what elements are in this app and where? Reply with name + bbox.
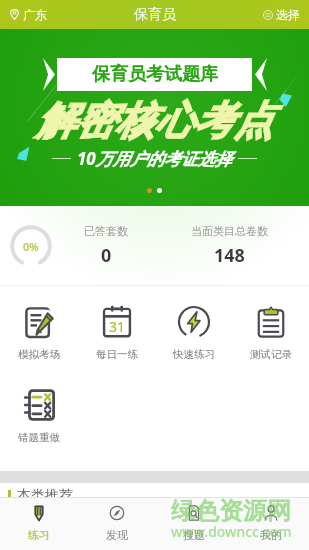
staticText: 148	[214, 243, 245, 268]
button[interactable]: 错题重做	[0, 369, 77, 452]
staticText: 0%	[23, 239, 39, 254]
staticText: www.downcc.com	[171, 522, 292, 541]
staticText: 本类推荐	[17, 487, 73, 505]
button[interactable]: 测试记录	[232, 286, 309, 369]
staticText: 我的	[260, 528, 282, 542]
staticText: 模拟考场	[18, 348, 60, 361]
button[interactable]: 我的	[232, 498, 309, 550]
staticText: 选择	[276, 7, 300, 22]
staticText: 每日一练	[96, 348, 138, 361]
staticText: 已答套数	[84, 224, 128, 238]
staticText: 解密核心考点	[36, 96, 273, 145]
button[interactable]: 广东	[7, 4, 49, 25]
staticText: 练习	[28, 528, 50, 542]
staticText: 31	[109, 317, 126, 336]
button[interactable]: 选择	[261, 4, 302, 25]
button[interactable]: 发现	[78, 498, 155, 550]
button[interactable]: 快速练习	[155, 286, 232, 369]
staticText: 错题重做	[18, 431, 60, 444]
staticText: 测试记录	[250, 348, 292, 361]
staticText: 绿色资源网	[171, 496, 291, 526]
button[interactable]: 31	[78, 286, 155, 369]
button[interactable]: 搜题	[155, 498, 232, 550]
staticText: 搜题	[183, 528, 205, 542]
staticText: 当面类目总卷数	[191, 224, 268, 238]
staticText: 快速练习	[173, 348, 215, 361]
staticText: 发现	[106, 528, 128, 542]
button[interactable]: 练习	[0, 498, 78, 550]
button[interactable]: 模拟考场	[0, 286, 78, 369]
staticText: 0	[101, 243, 112, 268]
staticText: 保育员	[134, 6, 176, 24]
staticText: 广东	[23, 7, 47, 22]
staticText: 10万用户的考证选择	[77, 147, 232, 170]
staticText: 保育员考试题库	[92, 63, 218, 86]
